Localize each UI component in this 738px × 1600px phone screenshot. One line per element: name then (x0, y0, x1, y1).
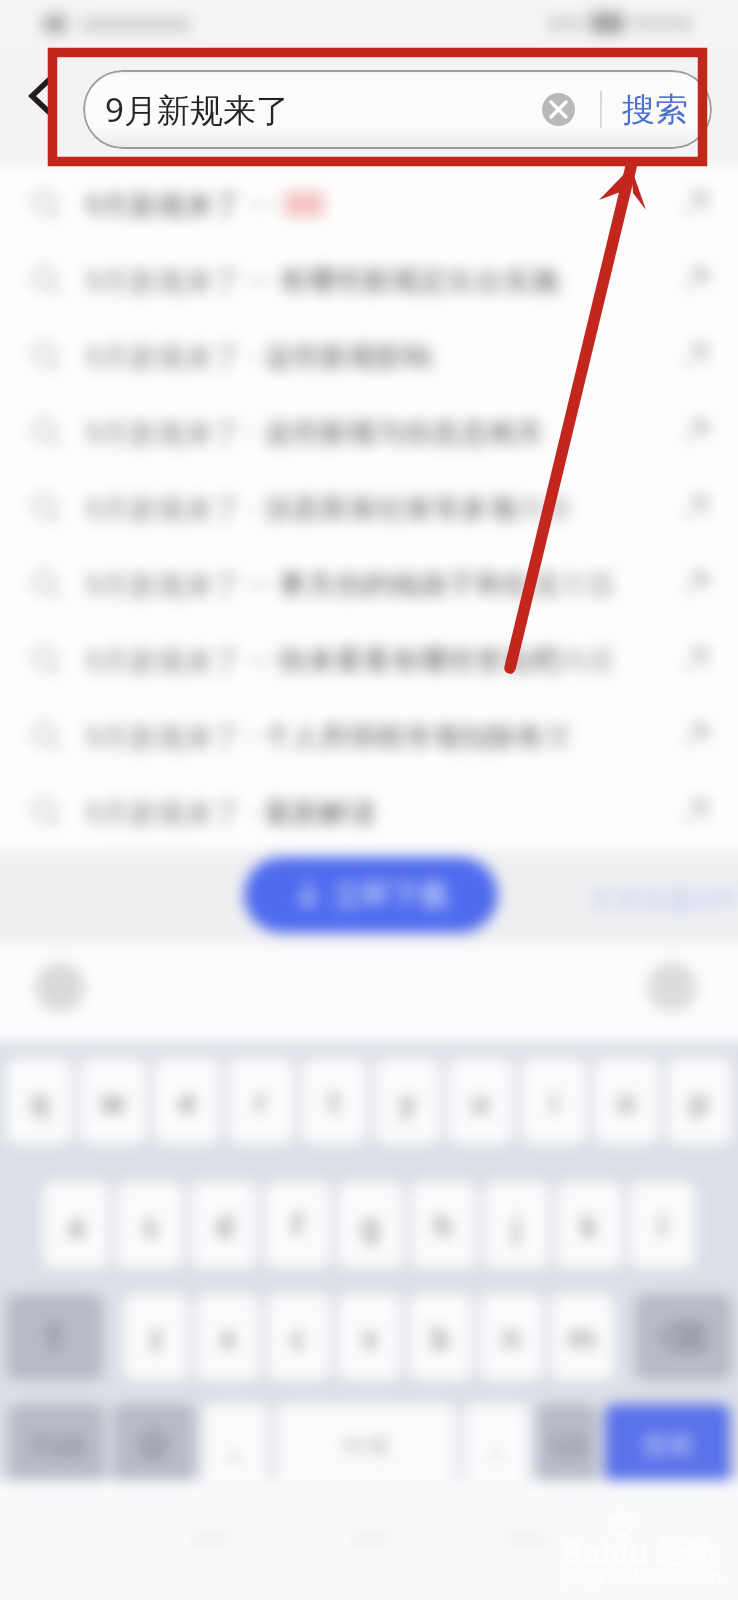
staticText: 事关你的钱袋子和生活 (279, 567, 559, 602)
button[interactable]: 打开百度APP (592, 882, 738, 916)
button[interactable]: 9月新规来了 · (0, 470, 738, 546)
button[interactable]: 9月新规来了 ··· (0, 622, 738, 698)
button[interactable]: l (630, 1182, 695, 1268)
button[interactable]: s (117, 1182, 183, 1268)
button[interactable]: Symbols (8, 1404, 105, 1486)
staticText: d (215, 1205, 234, 1246)
button[interactable]: Shift (6, 1294, 103, 1380)
staticText: 9月新规来了 ··· (85, 641, 279, 679)
staticText: f (292, 1205, 303, 1246)
button[interactable]: h (411, 1182, 476, 1268)
button[interactable]: 9月新规来了 · (0, 318, 738, 394)
staticText: ?123 (30, 1428, 84, 1462)
staticText: i (550, 1081, 558, 1122)
staticText: 变 (544, 719, 572, 754)
button[interactable]: q (6, 1058, 72, 1144)
button[interactable]: b (409, 1294, 472, 1380)
button[interactable]: t (302, 1058, 367, 1144)
staticText: 123 (548, 1430, 586, 1460)
button[interactable]: k (557, 1182, 622, 1268)
button[interactable]: Back (8, 58, 74, 132)
button[interactable]: Backspace (635, 1294, 732, 1380)
staticText: 这些新规与你息息相关 (264, 415, 544, 450)
button[interactable]: z (124, 1294, 188, 1380)
button[interactable]: Clear text (542, 93, 575, 126)
staticText: 涉及医保社保等多项 (264, 491, 516, 526)
staticText: e (179, 1081, 196, 1122)
button[interactable]: More (647, 962, 697, 1012)
staticText: q (30, 1081, 49, 1122)
button[interactable]: 9月新规来了 · (0, 698, 738, 774)
button[interactable]: n (480, 1294, 543, 1380)
button[interactable]: c (267, 1294, 330, 1380)
button[interactable]: x (196, 1294, 259, 1380)
button[interactable]: f (265, 1182, 330, 1268)
staticText: y (400, 1081, 416, 1122)
staticText: j (513, 1205, 521, 1246)
button[interactable]: 9月新规来了 (0, 166, 738, 242)
staticText: p (690, 1081, 709, 1122)
button[interactable]: Menu (35, 962, 85, 1012)
staticText: 这些新规影响 (264, 339, 432, 374)
staticText: 搜索 (642, 1429, 694, 1462)
button[interactable]: Emoji (113, 1404, 195, 1486)
button[interactable]: u (448, 1058, 513, 1144)
staticText: , (231, 1425, 240, 1466)
staticText: o (617, 1081, 636, 1122)
button[interactable]: 9月新规来了 · (0, 394, 738, 470)
button[interactable]: Clear text (542, 93, 575, 126)
staticText: s (143, 1205, 158, 1246)
staticText: z (149, 1317, 164, 1358)
staticText: 9月新规来了 (105, 87, 289, 132)
staticText: 中/英 (342, 1432, 390, 1459)
staticText: 立即下载 (333, 877, 449, 914)
button[interactable]: 搜索 (602, 89, 712, 131)
staticText: 9月新规来了 · (85, 793, 264, 831)
button[interactable]: Numbers (537, 1404, 597, 1486)
staticText: 9月新规来了 ··· (85, 261, 279, 299)
staticText: 内容 (559, 643, 615, 678)
button[interactable]: e (154, 1058, 220, 1144)
button[interactable]: a (43, 1182, 109, 1268)
button[interactable]: p (667, 1058, 732, 1144)
staticText: 9月新规来了 · (85, 489, 264, 527)
staticText: r (255, 1081, 268, 1122)
button[interactable]: y (375, 1058, 440, 1144)
button[interactable]: 9月新规来了 (83, 70, 712, 149)
button[interactable]: 9月新规来了 (83, 70, 712, 149)
button[interactable]: d (191, 1182, 257, 1268)
button[interactable]: 立即下载 (244, 857, 498, 933)
button[interactable]: 搜索 (602, 89, 712, 131)
staticText: 9月新规来了 · (85, 413, 264, 451)
staticText: ⇧ (40, 1317, 69, 1357)
button[interactable]: . (464, 1404, 529, 1486)
button[interactable]: j (484, 1182, 549, 1268)
button[interactable]: Search (605, 1404, 730, 1486)
staticText: 搜索 (622, 89, 688, 131)
button[interactable]: m (551, 1294, 614, 1380)
button[interactable]: Space (276, 1404, 456, 1486)
staticText: t (329, 1081, 340, 1122)
button[interactable]: r (228, 1058, 294, 1144)
button[interactable]: v (338, 1294, 401, 1380)
staticText: k (581, 1205, 598, 1246)
button[interactable]: w (80, 1058, 146, 1144)
button[interactable]: Back (8, 58, 74, 132)
button[interactable]: 9月新规来了 ··· (0, 546, 738, 622)
button[interactable]: g (338, 1182, 403, 1268)
staticText: c (291, 1317, 306, 1358)
button[interactable]: o (594, 1058, 659, 1144)
staticText: m (568, 1317, 597, 1358)
button[interactable]: 9月新规来了 · (0, 774, 738, 850)
staticText: 个人所得税专项扣除有 (264, 719, 544, 754)
staticText: 打开百度APP (592, 882, 738, 916)
button[interactable]: , (203, 1404, 268, 1486)
button[interactable]: i (521, 1058, 586, 1144)
staticText: b (431, 1317, 450, 1358)
button[interactable]: 9月新规来了 ··· (0, 242, 738, 318)
